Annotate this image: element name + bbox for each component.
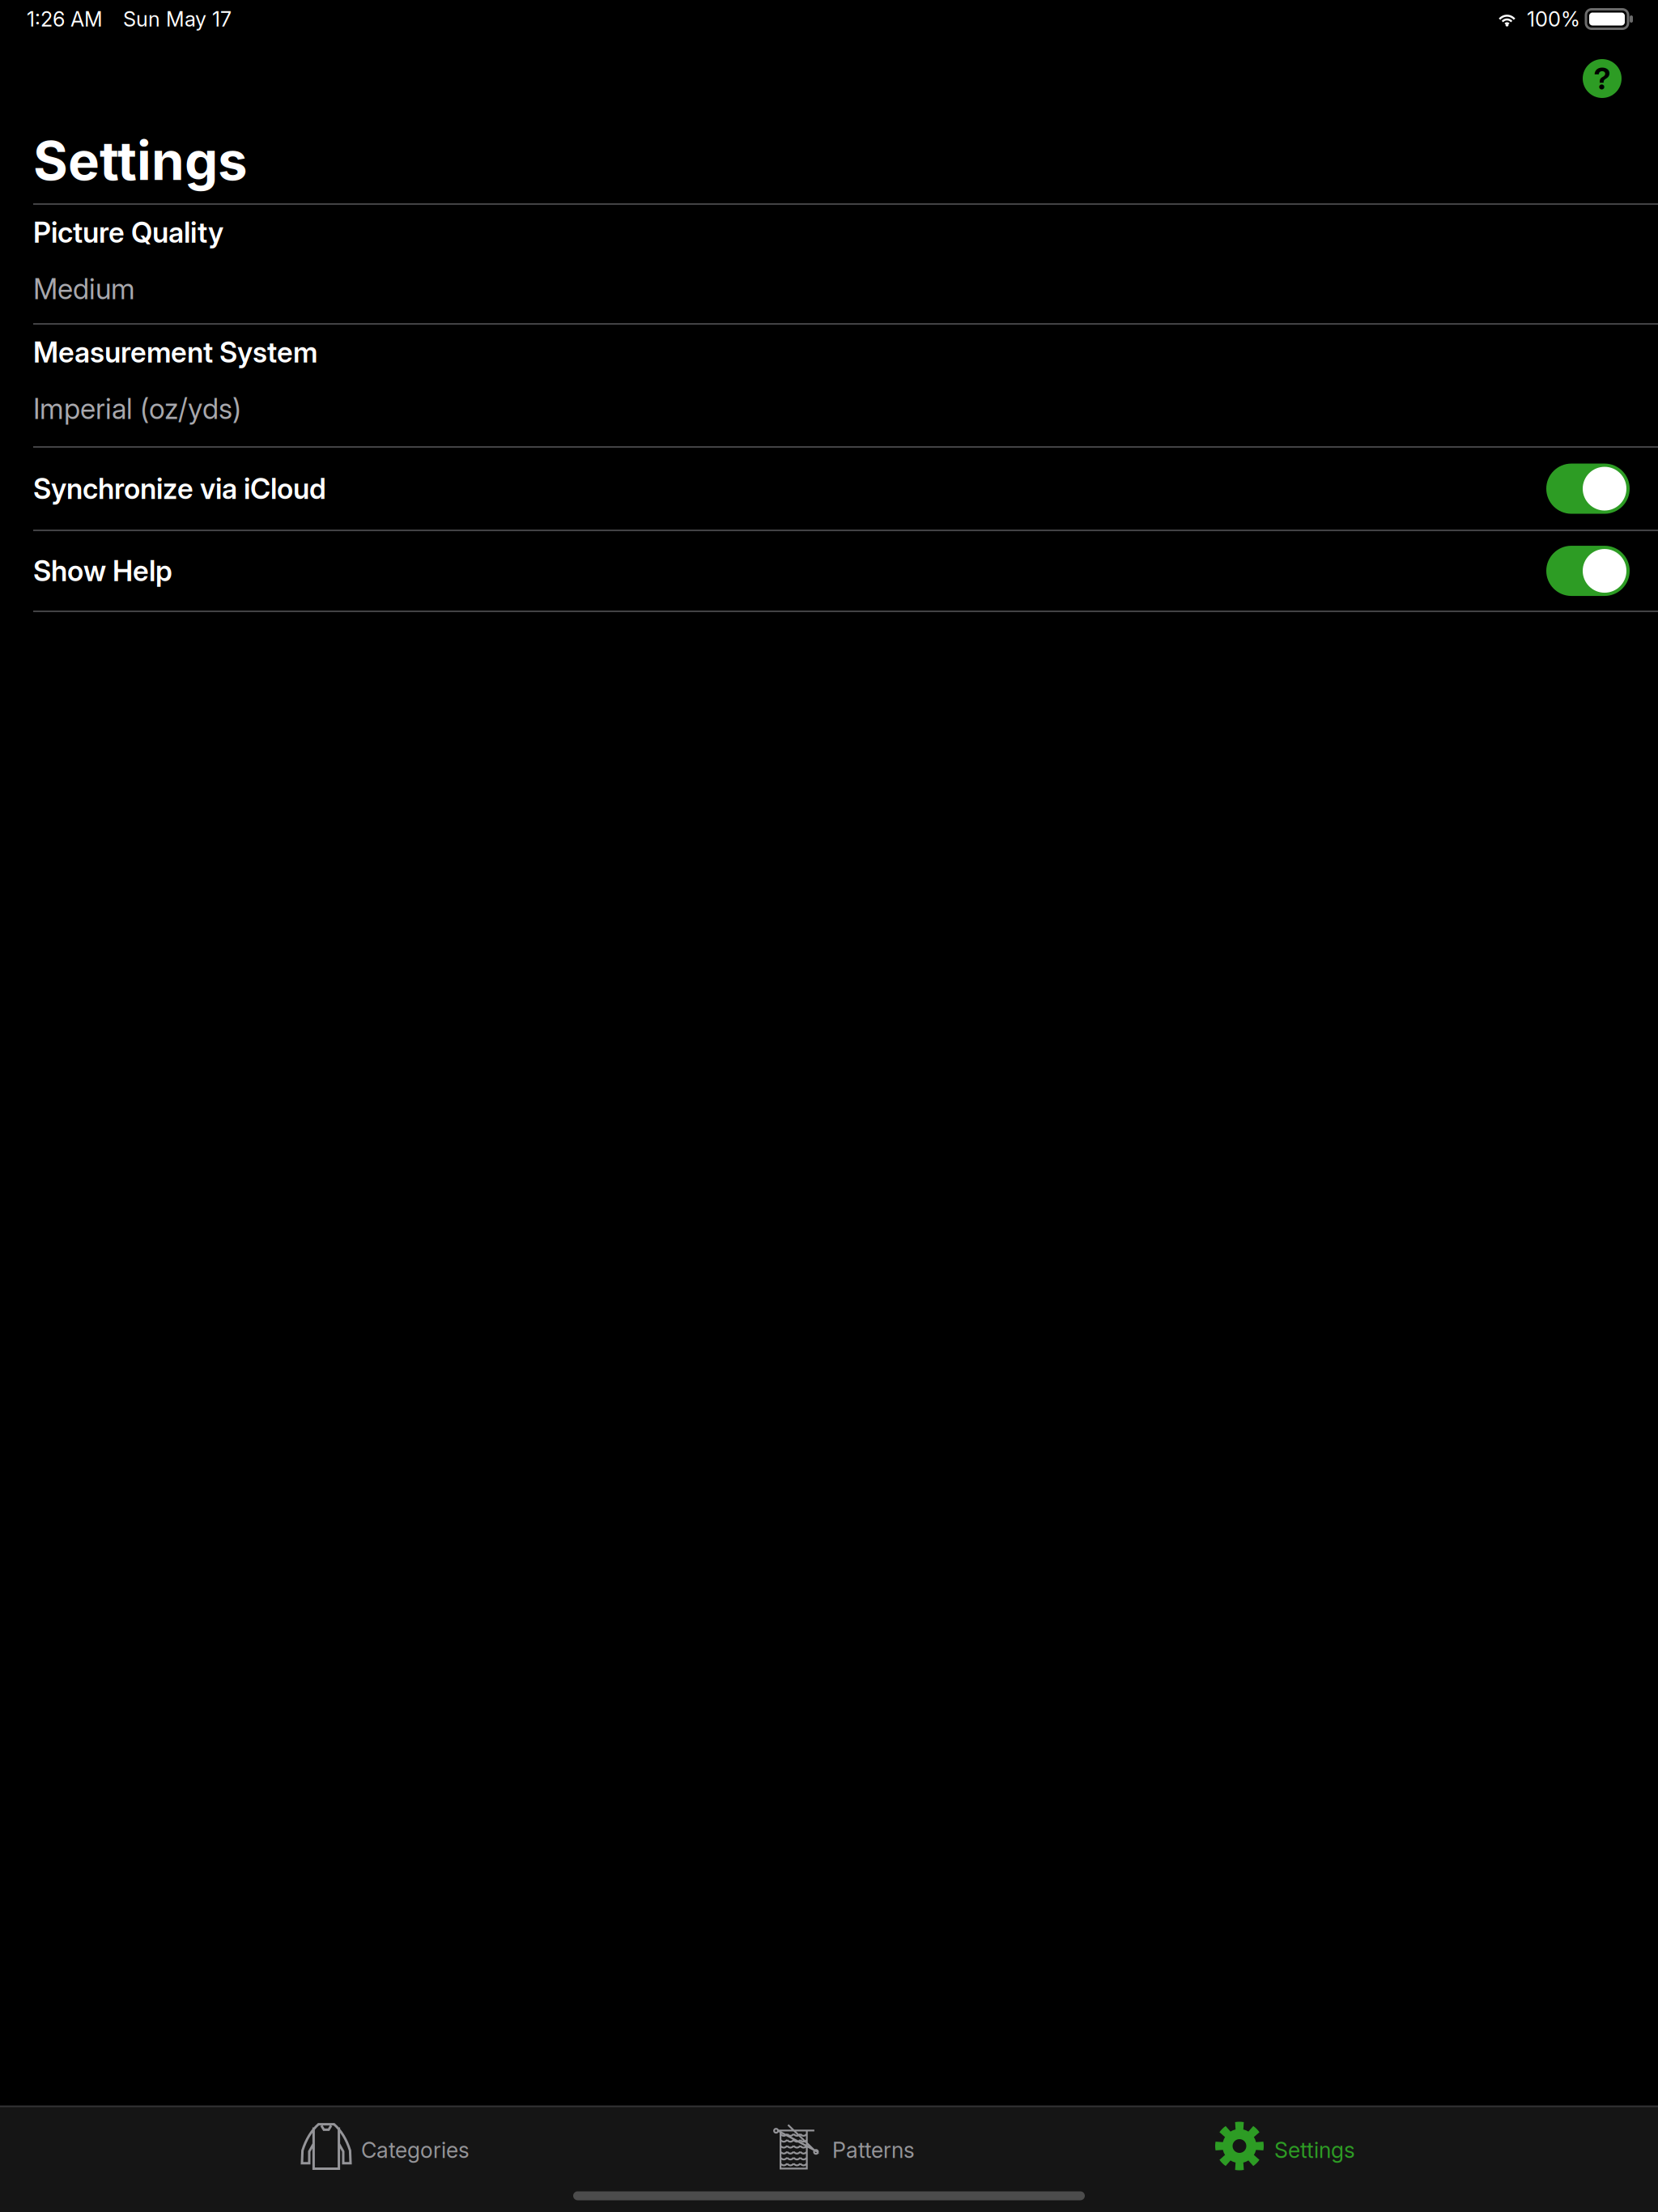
button[interactable]: Synchronize via iCloud <box>0 448 1658 530</box>
staticText: Patterns <box>832 2137 915 2163</box>
staticText: Settings <box>1274 2137 1355 2163</box>
staticText: Show Help <box>33 554 172 588</box>
button[interactable]: Show Help <box>0 531 1658 610</box>
button[interactable]: Picture Quality <box>0 205 1658 323</box>
staticText: ? <box>1594 60 1611 97</box>
staticText: Picture Quality <box>33 215 223 249</box>
staticText: Imperial (oz/yds) <box>33 392 241 426</box>
button[interactable]: Help <box>1562 38 1643 119</box>
staticText: Medium <box>33 272 135 306</box>
button[interactable]: Settings <box>1123 2107 1447 2185</box>
button[interactable]: Categories <box>223 2107 547 2185</box>
staticText: Synchronize via iCloud <box>33 472 326 506</box>
button[interactable]: Patterns <box>682 2107 1005 2185</box>
staticText: Sun May 17 <box>123 7 232 31</box>
staticText: Settings <box>33 129 248 193</box>
staticText: Measurement System <box>33 335 317 369</box>
staticText: 100% <box>1527 7 1580 31</box>
button[interactable]: Measurement System <box>0 325 1658 446</box>
staticText: 1:26 AM <box>27 7 103 31</box>
staticText: Categories <box>361 2137 470 2163</box>
